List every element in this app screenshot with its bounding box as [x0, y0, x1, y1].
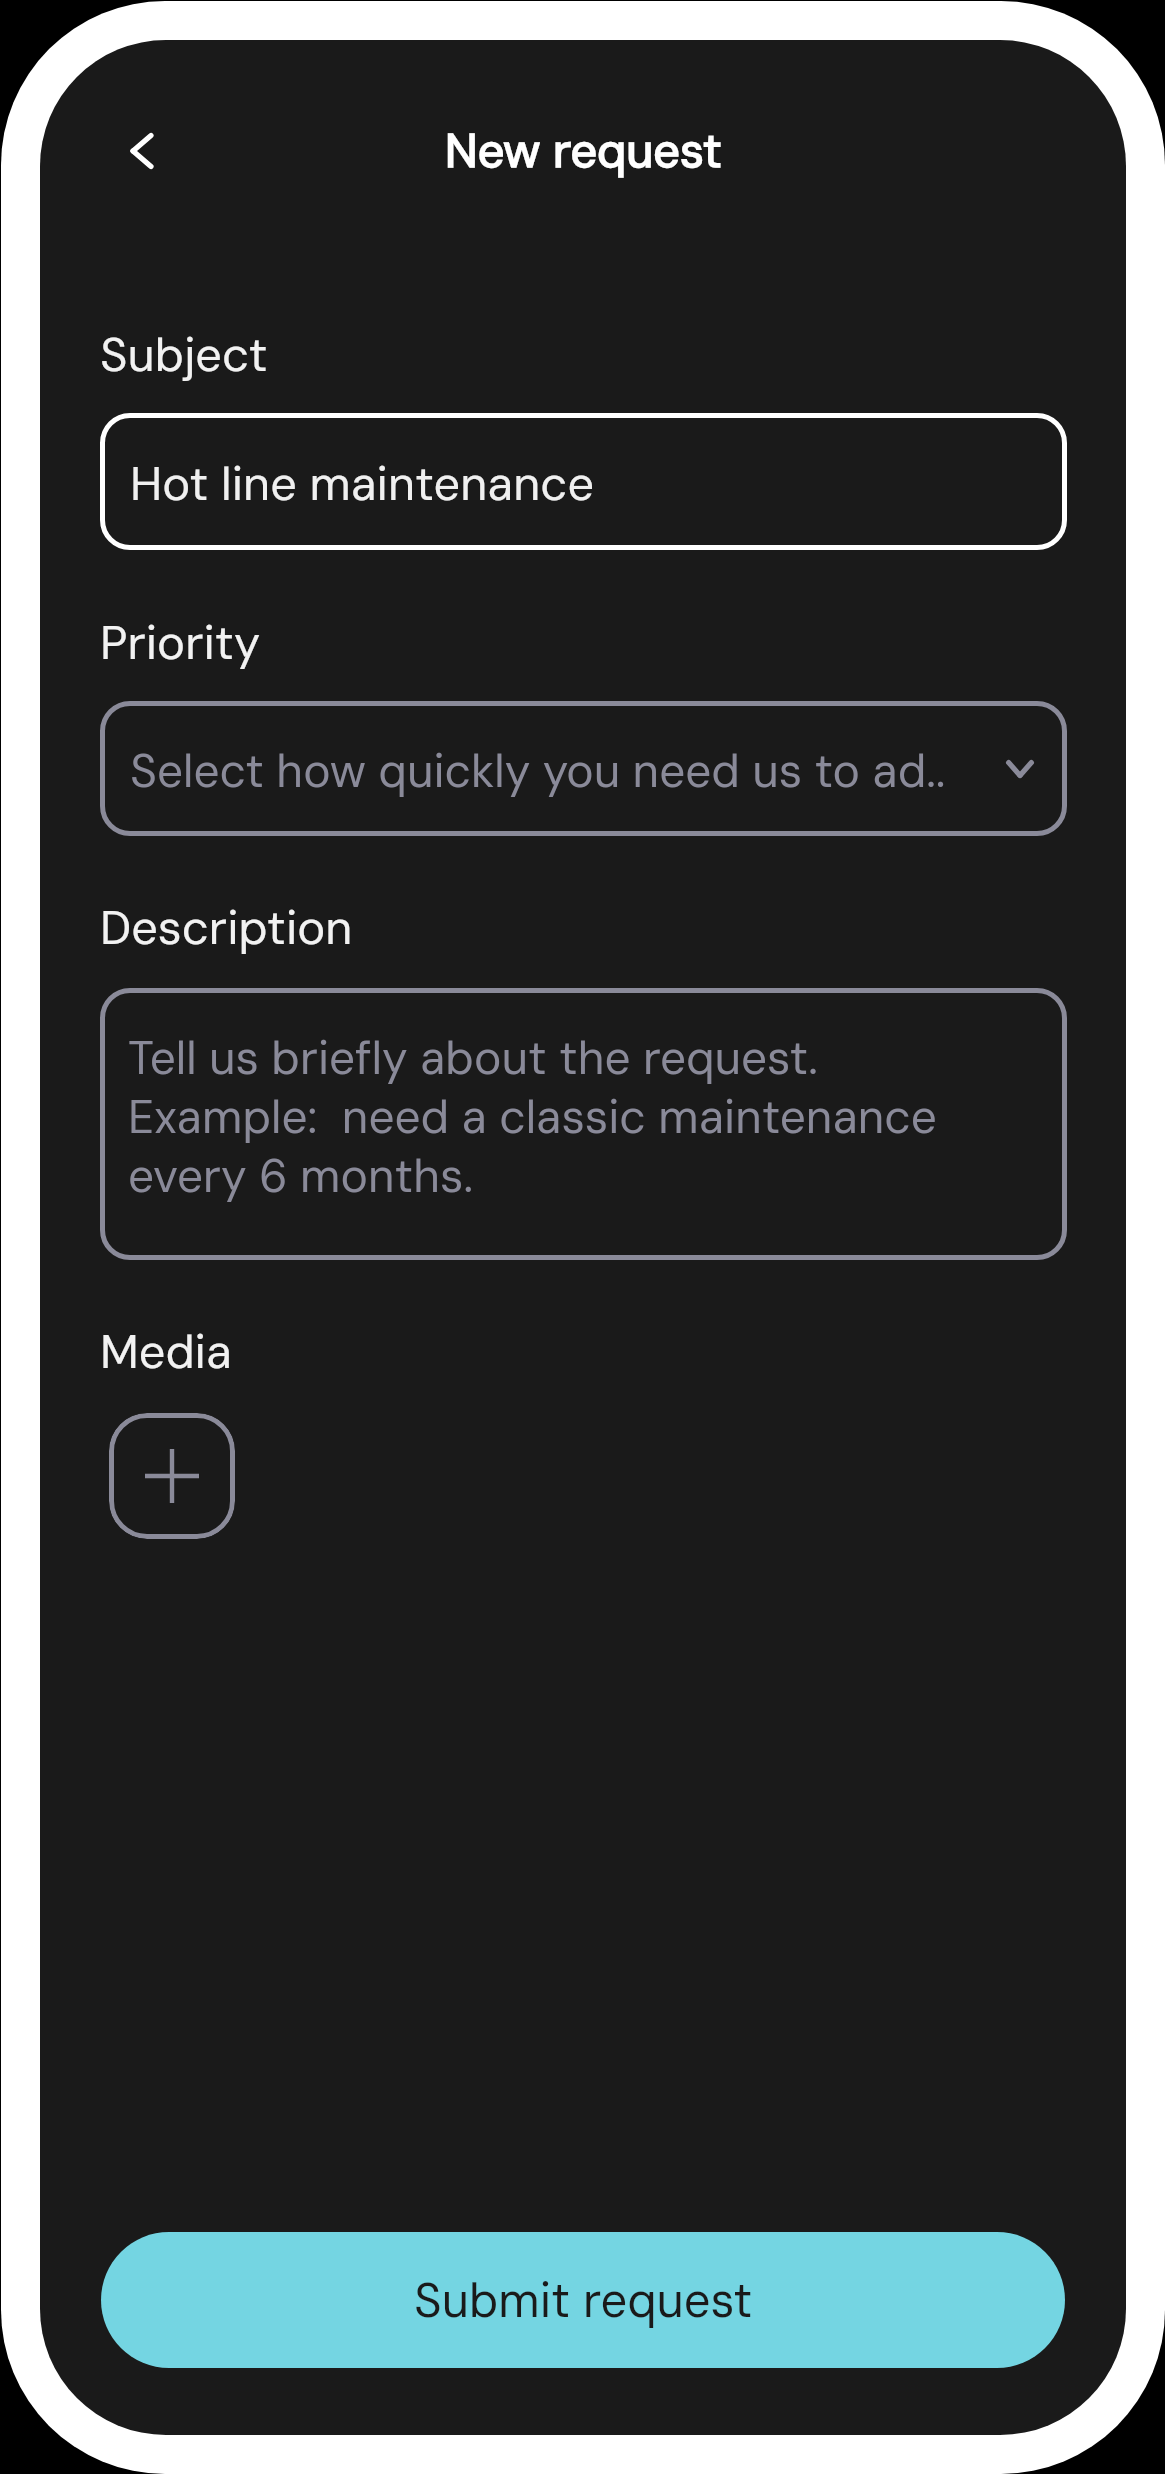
staticText: Hot line maintenance	[130, 453, 595, 514]
button[interactable]: Select how quickly you need us to ad..	[100, 701, 1067, 836]
staticText: Description	[100, 897, 353, 958]
staticText: New request	[445, 120, 722, 181]
button[interactable]: Hot line maintenance	[100, 413, 1067, 550]
staticText: Subject	[100, 324, 268, 385]
staticText: Select how quickly you need us to ad..	[130, 741, 946, 801]
staticText: Submit request	[414, 2270, 753, 2331]
staticText: Tell us briefly about the request. Examp…	[128, 1028, 937, 1206]
button[interactable]: Submit request	[101, 2232, 1065, 2368]
staticText: Priority	[100, 612, 261, 673]
button[interactable]: Back	[94, 103, 190, 199]
button[interactable]: Add media	[109, 1413, 235, 1539]
button[interactable]: Tell us briefly about the request. Examp…	[100, 988, 1067, 1260]
staticText: Media	[100, 1321, 232, 1382]
